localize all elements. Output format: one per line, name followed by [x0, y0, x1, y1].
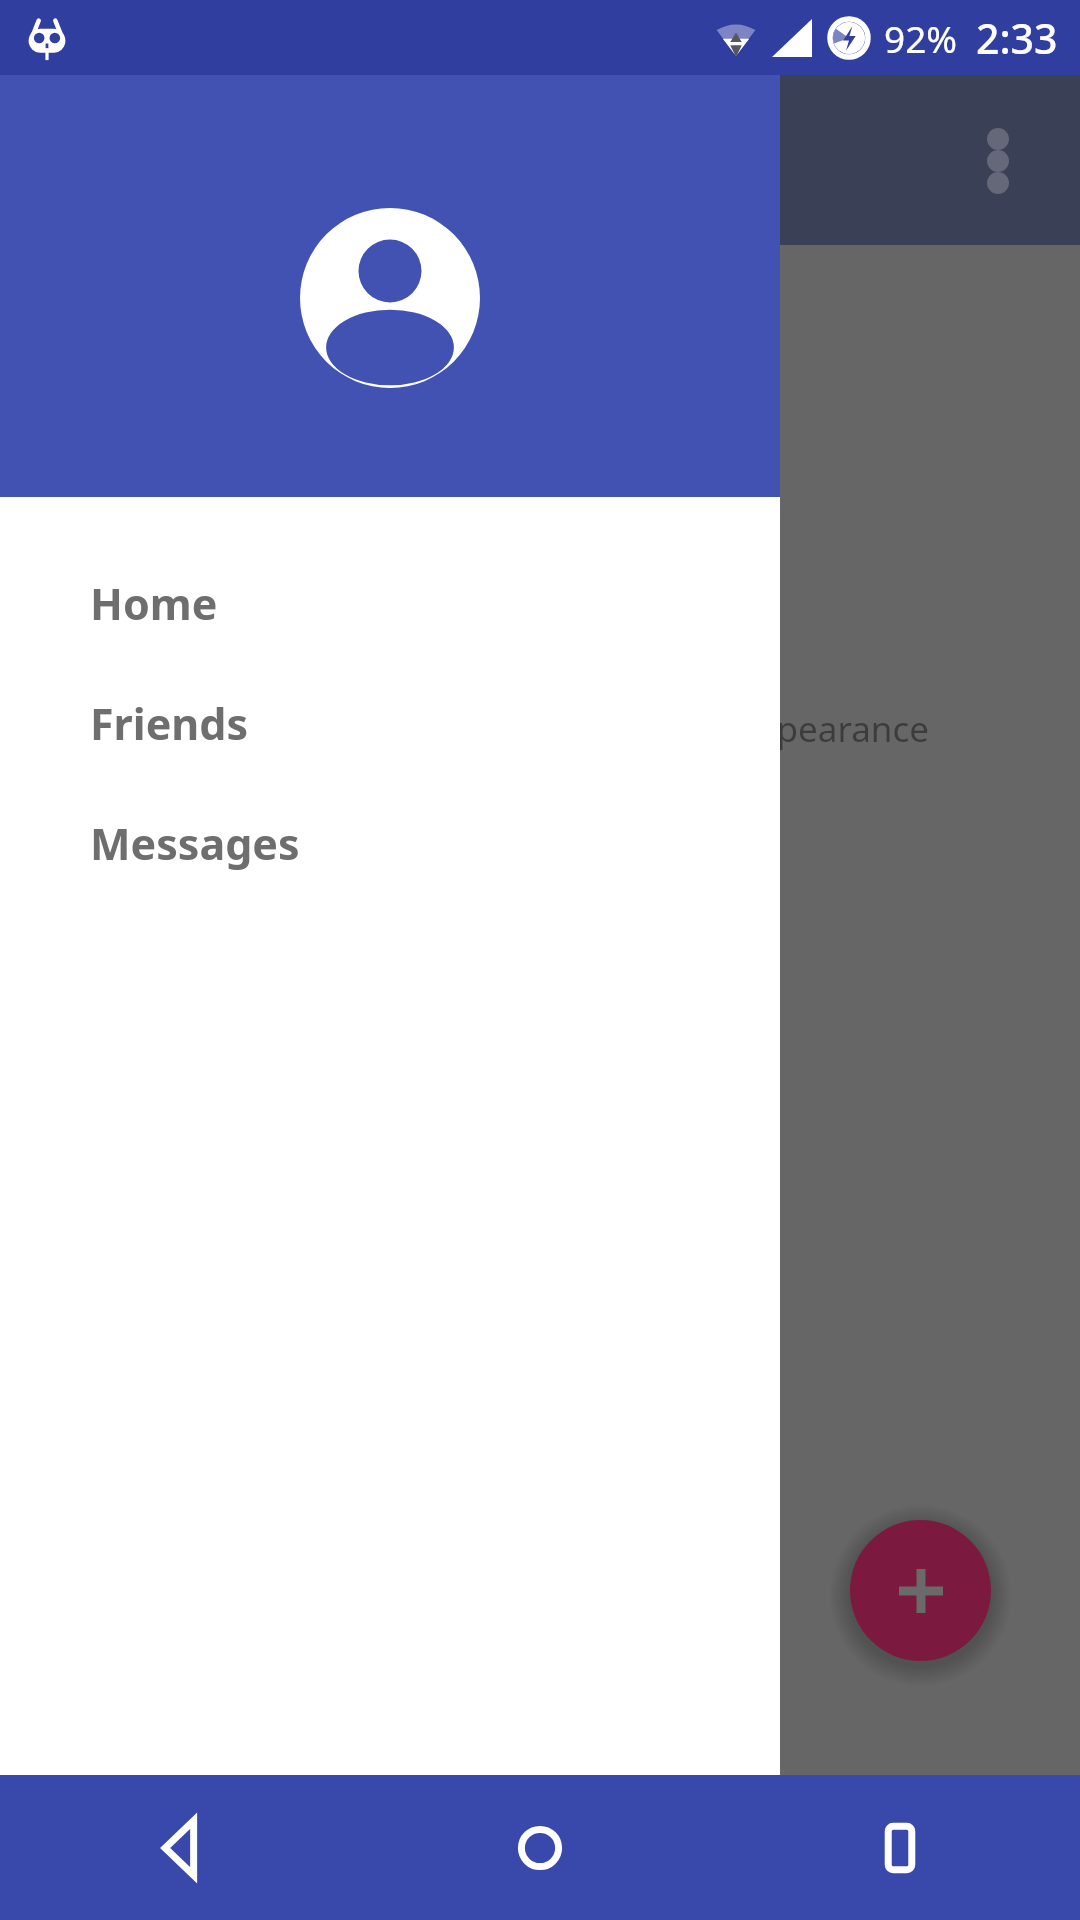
staticText: Home	[90, 574, 218, 633]
staticText: 2:33	[976, 10, 1058, 66]
button[interactable]: More options	[950, 112, 1046, 208]
button[interactable]: Home	[360, 1775, 720, 1920]
staticText: Friends	[90, 694, 249, 753]
button[interactable]: Recents	[720, 1775, 1080, 1920]
button[interactable]: Back	[0, 1775, 360, 1920]
button[interactable]: Messages	[0, 783, 780, 903]
staticText: 92%	[884, 13, 958, 63]
button[interactable]: Home	[0, 543, 780, 663]
button[interactable]: Add	[850, 1520, 991, 1661]
staticText: Messages	[90, 814, 300, 873]
staticText: Change appearance	[600, 705, 930, 753]
button[interactable]	[0, 75, 780, 497]
button[interactable]: Friends	[0, 663, 780, 783]
